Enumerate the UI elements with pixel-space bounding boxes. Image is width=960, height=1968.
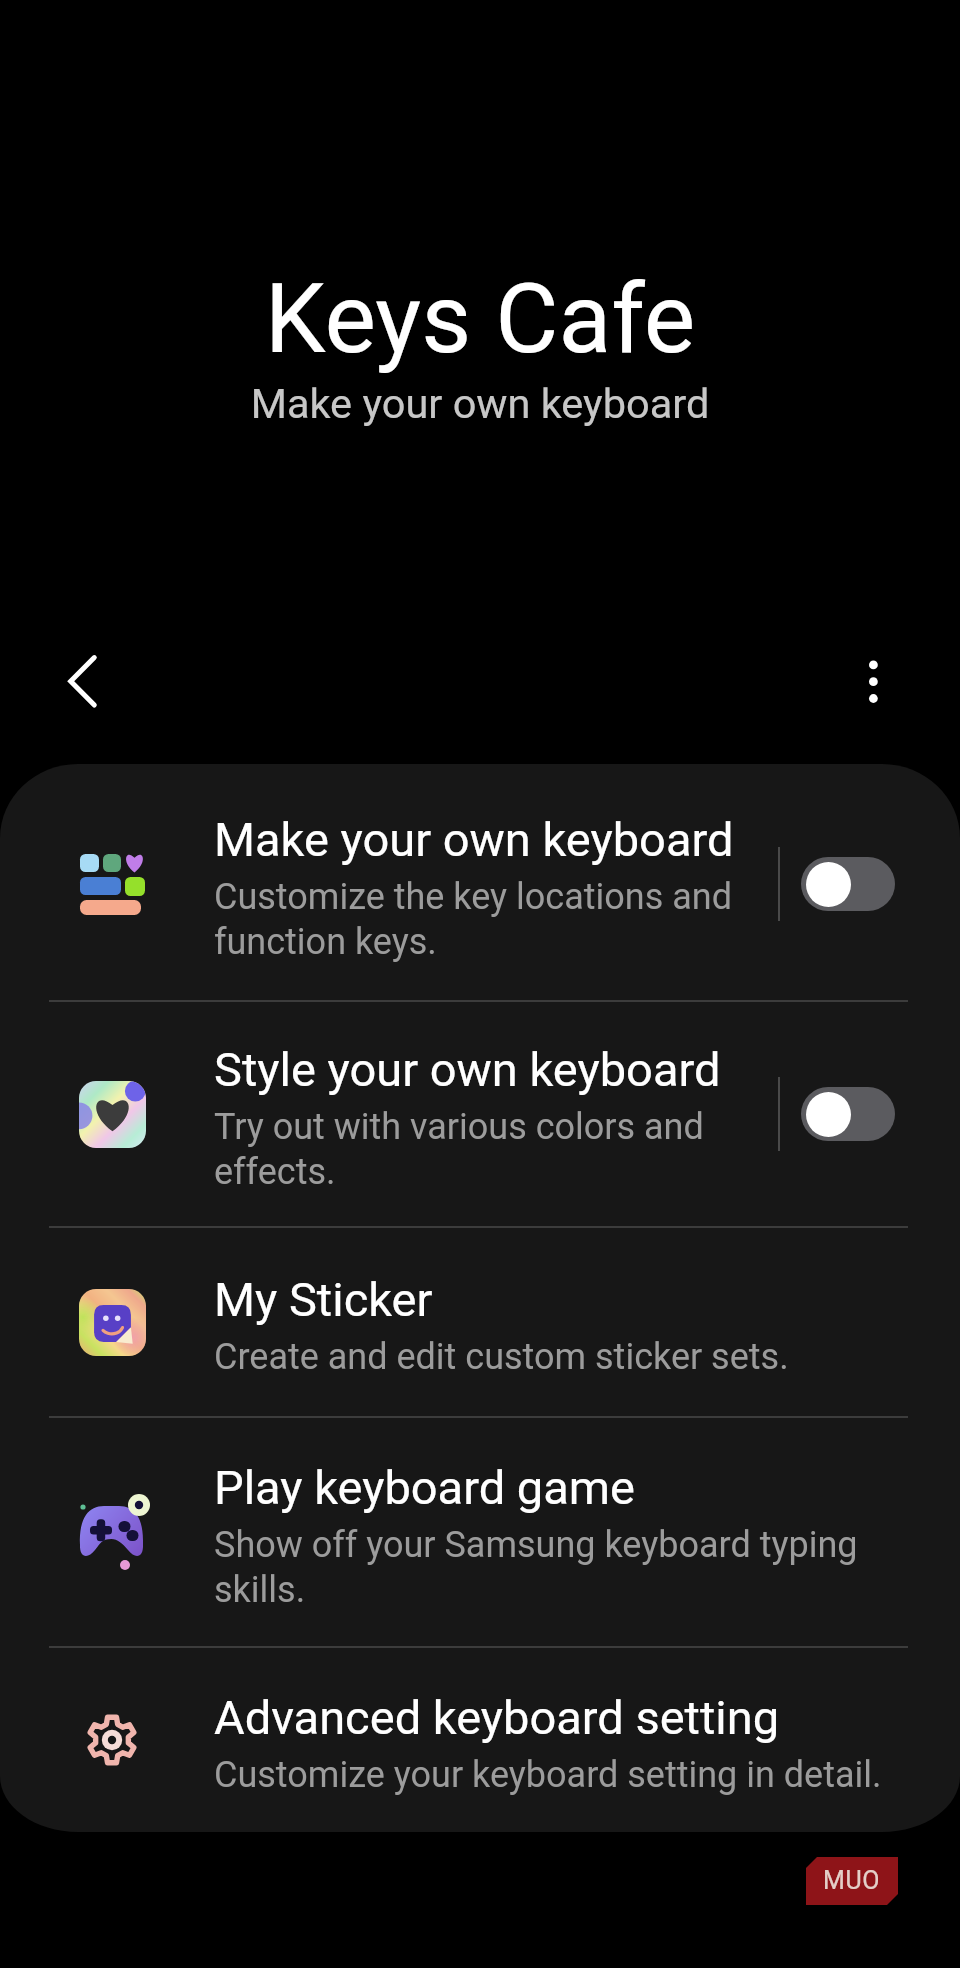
- staticText: Try out with various colors and effects.: [214, 1106, 754, 1193]
- button[interactable]: Style your own keyboard: [0, 1002, 960, 1226]
- staticText: Make your own keyboard: [0, 379, 960, 428]
- button[interactable]: More options: [824, 632, 924, 732]
- staticText: Show off your Samsung keyboard typing sk…: [214, 1524, 894, 1611]
- button[interactable]: My Sticker: [0, 1228, 960, 1416]
- staticText: Style your own keyboard: [214, 1042, 721, 1097]
- button[interactable]: Play keyboard game: [0, 1418, 960, 1646]
- staticText: Create and edit custom sticker sets.: [214, 1336, 789, 1378]
- staticText: Keys Cafe: [0, 262, 960, 376]
- button[interactable]: Toggle: [801, 1087, 895, 1141]
- button[interactable]: Navigate up: [34, 632, 134, 732]
- button[interactable]: Advanced keyboard setting: [0, 1648, 960, 1832]
- staticText: My Sticker: [214, 1272, 433, 1327]
- staticText: Advanced keyboard setting: [214, 1690, 780, 1745]
- staticText: MUO: [823, 1866, 881, 1895]
- staticText: Make your own keyboard: [214, 812, 734, 867]
- button[interactable]: Toggle: [801, 857, 895, 911]
- staticText: Customize your keyboard setting in detai…: [214, 1754, 882, 1796]
- button[interactable]: Make your own keyboard: [0, 768, 960, 1000]
- staticText: Play keyboard game: [214, 1460, 635, 1515]
- staticText: Customize the key locations and function…: [214, 876, 754, 963]
